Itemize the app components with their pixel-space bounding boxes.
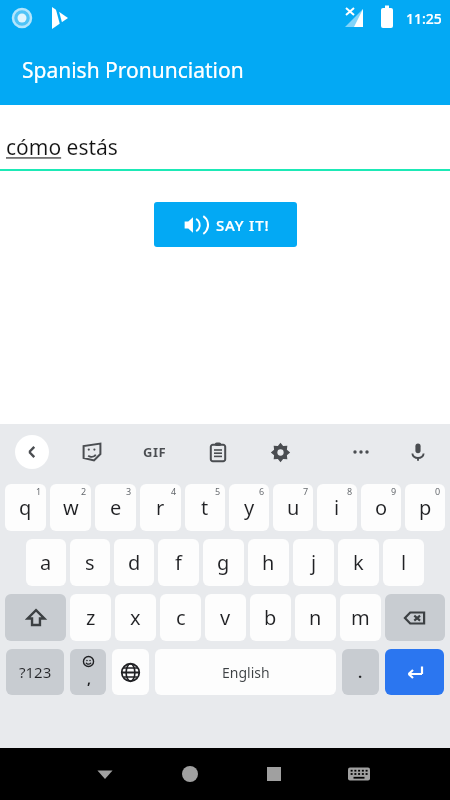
staticText: w: [63, 494, 79, 521]
button[interactable]: Change language: [112, 649, 149, 695]
staticText: o: [375, 494, 388, 521]
staticText: 9: [391, 485, 397, 497]
button[interactable]: Backspace: [385, 594, 445, 641]
button[interactable]: cómo estás: [0, 133, 450, 171]
button[interactable]: Home: [168, 752, 212, 796]
button[interactable]: Enter: [385, 649, 444, 695]
button[interactable]: p: [405, 484, 445, 531]
button[interactable]: q: [5, 484, 46, 531]
staticText: e: [110, 494, 122, 521]
button[interactable]: Hide keyboard: [337, 752, 381, 796]
button[interactable]: Stickers: [74, 434, 110, 470]
staticText: p: [419, 494, 432, 521]
button[interactable]: z: [70, 594, 111, 641]
button[interactable]: y: [229, 484, 269, 531]
staticText: s: [85, 549, 95, 576]
staticText: 1: [36, 485, 42, 497]
staticText: g: [217, 549, 230, 576]
staticText: z: [86, 604, 96, 631]
staticText: English: [222, 663, 270, 682]
button[interactable]: Emoji and comma: [70, 649, 106, 695]
staticText: 11:25: [406, 9, 442, 28]
staticText: n: [309, 604, 322, 631]
button[interactable]: Settings: [262, 434, 298, 470]
button[interactable]: English: [155, 649, 336, 695]
button[interactable]: b: [250, 594, 291, 641]
staticText: c: [176, 604, 186, 631]
staticText: v: [220, 604, 231, 631]
button[interactable]: h: [248, 539, 289, 586]
staticText: ?123: [19, 662, 52, 682]
button[interactable]: g: [203, 539, 244, 586]
button[interactable]: o: [361, 484, 401, 531]
staticText: f: [175, 549, 182, 576]
staticText: 4: [171, 485, 177, 497]
button[interactable]: j: [293, 539, 334, 586]
staticText: 3: [126, 485, 132, 497]
staticText: u: [287, 494, 300, 521]
staticText: l: [401, 549, 407, 576]
button[interactable]: Recents: [252, 752, 296, 796]
button[interactable]: r: [140, 484, 181, 531]
button[interactable]: ?123: [6, 649, 64, 695]
button[interactable]: Voice input: [400, 434, 436, 470]
staticText: k: [353, 549, 364, 576]
button[interactable]: SAY IT!: [154, 202, 297, 247]
staticText: 8: [347, 485, 353, 497]
button[interactable]: c: [160, 594, 201, 641]
staticText: GIF: [143, 443, 167, 461]
button[interactable]: u: [273, 484, 313, 531]
button[interactable]: n: [295, 594, 336, 641]
staticText: 5: [215, 485, 221, 497]
button[interactable]: e: [95, 484, 136, 531]
staticText: m: [351, 604, 370, 631]
staticText: d: [128, 549, 141, 576]
button[interactable]: l: [383, 539, 424, 586]
button[interactable]: x: [115, 594, 156, 641]
button[interactable]: k: [338, 539, 379, 586]
button[interactable]: More options: [343, 434, 379, 470]
button[interactable]: m: [340, 594, 381, 641]
button[interactable]: w: [50, 484, 91, 531]
staticText: 0: [435, 485, 441, 497]
staticText: q: [19, 494, 32, 521]
staticText: Spanish Pronunciation: [22, 56, 244, 85]
button[interactable]: Back: [15, 435, 49, 469]
button[interactable]: GIF: [135, 432, 175, 472]
staticText: 2: [81, 485, 87, 497]
button[interactable]: d: [114, 539, 154, 586]
button[interactable]: i: [317, 484, 357, 531]
staticText: 7: [303, 485, 309, 497]
button[interactable]: Clipboard: [200, 434, 236, 470]
staticText: a: [40, 549, 52, 576]
button[interactable]: s: [70, 539, 110, 586]
button[interactable]: f: [158, 539, 199, 586]
button[interactable]: a: [26, 539, 66, 586]
staticText: x: [130, 604, 141, 631]
staticText: i: [334, 494, 340, 521]
button[interactable]: Back: [83, 752, 127, 796]
staticText: cómo estás: [6, 133, 118, 162]
staticText: y: [244, 494, 255, 521]
staticText: 6: [259, 485, 265, 497]
staticText: t: [201, 494, 209, 521]
button[interactable]: .: [342, 649, 379, 695]
staticText: h: [262, 549, 275, 576]
button[interactable]: v: [205, 594, 246, 641]
staticText: ,: [87, 669, 91, 688]
staticText: j: [311, 549, 317, 576]
staticText: SAY IT!: [216, 215, 270, 235]
staticText: r: [156, 494, 165, 521]
button[interactable]: t: [185, 484, 225, 531]
staticText: b: [264, 604, 277, 631]
button[interactable]: Shift: [5, 594, 66, 641]
staticText: .: [358, 662, 363, 682]
